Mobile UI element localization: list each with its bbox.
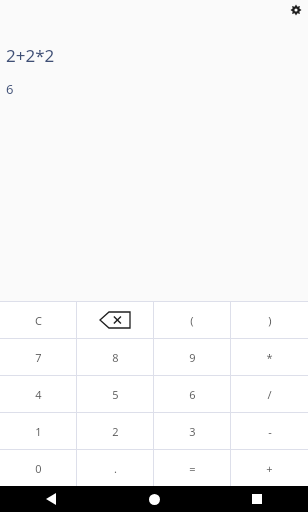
button[interactable]: 1 [0, 413, 76, 449]
staticText: - [268, 424, 272, 439]
button[interactable]: ( [154, 302, 230, 338]
staticText: ) [268, 313, 272, 328]
button[interactable]: 4 [0, 376, 76, 412]
button[interactable]: + [231, 450, 308, 486]
staticText: 7 [35, 350, 42, 365]
button[interactable]: / [231, 376, 308, 412]
button[interactable]: C [0, 302, 76, 338]
button[interactable]: Settings [288, 2, 304, 18]
button[interactable]: Recent apps [245, 487, 269, 511]
staticText: / [267, 387, 272, 402]
button[interactable]: - [231, 413, 308, 449]
staticText: 5 [112, 387, 119, 402]
staticText: 2 [112, 424, 119, 439]
button[interactable]: 2 [77, 413, 153, 449]
button[interactable]: Backspace [77, 302, 153, 338]
staticText: 2+2*2 [6, 44, 55, 67]
button[interactable]: 9 [154, 339, 230, 375]
button[interactable]: Back [39, 487, 63, 511]
button[interactable]: 7 [0, 339, 76, 375]
staticText: . [114, 461, 117, 476]
staticText: 6 [189, 387, 196, 402]
staticText: 9 [189, 350, 196, 365]
button[interactable]: * [231, 339, 308, 375]
button[interactable]: ) [231, 302, 308, 338]
staticText: 3 [189, 424, 196, 439]
staticText: 8 [112, 350, 119, 365]
staticText: C [35, 313, 42, 328]
button[interactable]: 3 [154, 413, 230, 449]
button[interactable]: = [154, 450, 230, 486]
staticText: = [189, 461, 196, 476]
staticText: 4 [35, 387, 42, 402]
staticText: * [266, 350, 273, 365]
button[interactable]: 5 [77, 376, 153, 412]
button[interactable]: 6 [154, 376, 230, 412]
button[interactable]: 8 [77, 339, 153, 375]
staticText: 0 [35, 461, 42, 476]
button[interactable]: Home [142, 487, 166, 511]
staticText: 6 [6, 80, 14, 98]
staticText: 1 [35, 424, 42, 439]
button[interactable]: 0 [0, 450, 76, 486]
staticText: ( [190, 313, 194, 328]
staticText: + [266, 461, 273, 476]
